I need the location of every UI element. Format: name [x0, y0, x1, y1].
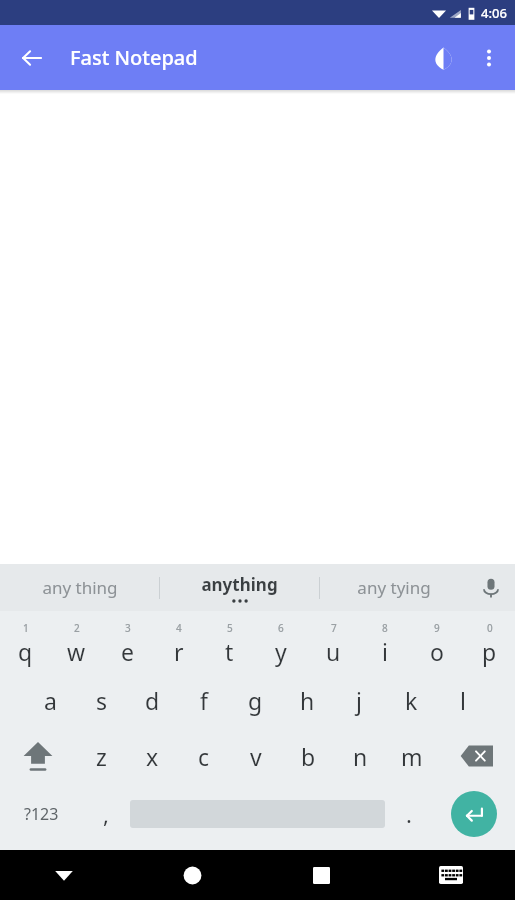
staticText: i: [382, 636, 388, 667]
button[interactable]: z: [76, 728, 127, 784]
staticText: h: [300, 685, 315, 716]
staticText: v: [250, 741, 262, 772]
button[interactable]: Voice input: [467, 564, 515, 611]
button[interactable]: n: [334, 728, 386, 784]
staticText: e: [121, 636, 134, 667]
button[interactable]: 0: [463, 615, 515, 672]
staticText: a: [44, 685, 57, 716]
button[interactable]: any tying: [320, 564, 467, 611]
staticText: o: [430, 636, 444, 667]
staticText: b: [301, 741, 316, 772]
button[interactable]: Recent apps: [257, 850, 386, 900]
button[interactable]: b: [282, 728, 334, 784]
button[interactable]: c: [178, 728, 230, 784]
button[interactable]: h: [281, 672, 333, 728]
button[interactable]: Theme: [419, 34, 467, 82]
staticText: 7: [331, 621, 337, 635]
button[interactable]: f: [178, 672, 229, 728]
staticText: 5: [227, 621, 233, 635]
staticText: any thing: [42, 576, 118, 599]
button[interactable]: Shift: [0, 728, 76, 784]
button[interactable]: s: [76, 672, 127, 728]
button[interactable]: 9: [411, 615, 463, 672]
button[interactable]: a: [25, 672, 76, 728]
staticText: p: [482, 636, 497, 667]
staticText: s: [96, 685, 108, 716]
button[interactable]: Backspace: [438, 728, 515, 784]
staticText: 4:06: [481, 4, 507, 22]
staticText: 9: [434, 621, 440, 635]
staticText: any tying: [357, 576, 431, 599]
staticText: c: [198, 741, 210, 772]
staticText: l: [460, 685, 466, 716]
button[interactable]: More options: [467, 34, 511, 82]
staticText: r: [174, 636, 184, 667]
staticText: Fast Notepad: [70, 44, 198, 71]
button[interactable]: 6: [255, 615, 307, 672]
staticText: q: [18, 636, 33, 667]
staticText: 0: [487, 621, 493, 635]
button[interactable]: v: [230, 728, 282, 784]
staticText: k: [405, 685, 418, 716]
staticText: 4: [176, 621, 182, 635]
button[interactable]: j: [333, 672, 385, 728]
button[interactable]: Enter: [451, 791, 497, 837]
staticText: 1: [23, 621, 29, 635]
button[interactable]: Hide keyboard: [0, 850, 128, 900]
button[interactable]: 3: [102, 615, 153, 672]
button[interactable]: any thing: [0, 564, 159, 611]
button[interactable]: l: [437, 672, 489, 728]
staticText: 3: [125, 621, 131, 635]
button[interactable]: Back: [8, 34, 56, 82]
button[interactable]: .: [385, 784, 433, 844]
button[interactable]: m: [386, 728, 438, 784]
button[interactable]: 8: [359, 615, 411, 672]
staticText: g: [248, 685, 263, 716]
button[interactable]: g: [229, 672, 281, 728]
staticText: z: [96, 741, 107, 772]
button[interactable]: 7: [307, 615, 359, 672]
button[interactable]: Home: [128, 850, 257, 900]
staticText: 6: [278, 621, 284, 635]
button[interactable]: 5: [204, 615, 255, 672]
staticText: u: [326, 636, 341, 667]
staticText: ?123: [24, 803, 59, 825]
staticText: x: [146, 741, 159, 772]
staticText: j: [356, 685, 362, 716]
staticText: anything: [201, 573, 278, 596]
staticText: t: [225, 636, 234, 667]
staticText: n: [353, 741, 368, 772]
button[interactable]: k: [385, 672, 437, 728]
button[interactable]: x: [127, 728, 178, 784]
button[interactable]: d: [127, 672, 178, 728]
staticText: f: [200, 685, 208, 716]
button[interactable]: anything: [160, 564, 319, 611]
button[interactable]: 4: [153, 615, 204, 672]
staticText: ,: [103, 799, 109, 829]
staticText: m: [401, 741, 423, 772]
button[interactable]: Switch keyboard: [386, 850, 515, 900]
button[interactable]: ?123: [0, 784, 82, 844]
button[interactable]: 1: [0, 615, 51, 672]
staticText: d: [145, 685, 160, 716]
staticText: 2: [74, 621, 80, 635]
staticText: w: [67, 636, 86, 667]
staticText: 8: [382, 621, 388, 635]
staticText: .: [406, 799, 412, 829]
button[interactable]: 2: [51, 615, 102, 672]
staticText: y: [275, 636, 287, 667]
button[interactable]: ,: [82, 784, 130, 844]
